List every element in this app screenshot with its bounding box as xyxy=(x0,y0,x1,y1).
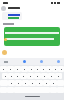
button[interactable] xyxy=(28,66,34,72)
button[interactable] xyxy=(41,73,48,79)
button[interactable] xyxy=(22,80,29,86)
button[interactable] xyxy=(8,73,14,79)
button[interactable] xyxy=(55,73,62,79)
button[interactable] xyxy=(0,66,7,72)
button[interactable] xyxy=(14,73,20,79)
button[interactable] xyxy=(48,73,55,79)
button[interactable] xyxy=(58,66,64,72)
button[interactable] xyxy=(40,66,46,72)
button[interactable] xyxy=(4,27,60,46)
button[interactable] xyxy=(27,73,34,79)
button[interactable]: Back xyxy=(0,5,64,11)
button[interactable] xyxy=(36,80,43,86)
button[interactable] xyxy=(15,80,22,86)
button[interactable] xyxy=(8,80,15,86)
button[interactable] xyxy=(29,80,36,86)
button[interactable] xyxy=(34,73,41,79)
button[interactable] xyxy=(34,66,40,72)
button[interactable] xyxy=(40,60,43,63)
button[interactable]: Emoji xyxy=(2,50,7,55)
button[interactable] xyxy=(2,73,8,79)
button[interactable] xyxy=(23,60,26,63)
button[interactable] xyxy=(46,66,52,72)
button[interactable] xyxy=(14,66,21,72)
button[interactable] xyxy=(21,66,28,72)
button[interactable] xyxy=(57,60,60,63)
button[interactable] xyxy=(7,66,14,72)
button[interactable] xyxy=(50,80,57,86)
button[interactable] xyxy=(20,73,27,79)
other: Back xyxy=(1,6,6,11)
button[interactable] xyxy=(2,12,22,20)
button[interactable] xyxy=(43,80,50,86)
button[interactable] xyxy=(52,66,58,72)
